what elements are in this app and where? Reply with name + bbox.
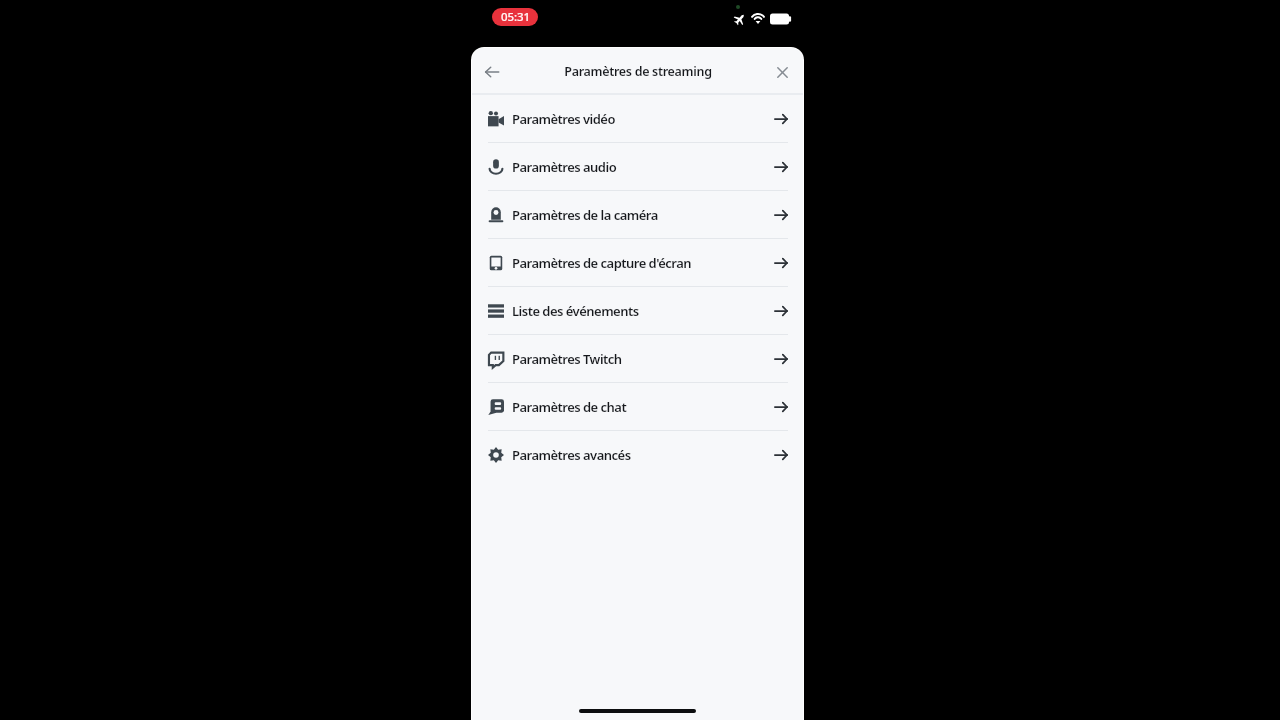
button[interactable]: Paramètres vidéo: [472, 95, 803, 143]
staticText: Paramètres audio: [512, 158, 617, 176]
staticText: Paramètres de streaming: [564, 63, 712, 80]
button[interactable]: Paramètres de la caméra: [472, 191, 803, 239]
staticText: Paramètres avancés: [512, 446, 631, 464]
button[interactable]: Fermer: [767, 57, 797, 87]
button[interactable]: Paramètres audio: [472, 143, 803, 191]
button[interactable]: Paramètres Twitch: [472, 335, 803, 383]
button[interactable]: Paramètres avancés: [472, 431, 803, 479]
staticText: Paramètres vidéo: [512, 110, 615, 128]
button[interactable]: Paramètres de chat: [472, 383, 803, 431]
button[interactable]: Retour: [477, 57, 507, 87]
button[interactable]: Liste des événements: [472, 287, 803, 335]
staticText: Liste des événements: [512, 302, 639, 320]
staticText: 05:31: [501, 9, 530, 25]
staticText: Paramètres Twitch: [512, 350, 622, 368]
staticText: Paramètres de chat: [512, 398, 627, 416]
button[interactable]: Paramètres de capture d'écran: [472, 239, 803, 287]
staticText: Paramètres de la caméra: [512, 206, 658, 224]
staticText: Paramètres de capture d'écran: [512, 254, 691, 272]
